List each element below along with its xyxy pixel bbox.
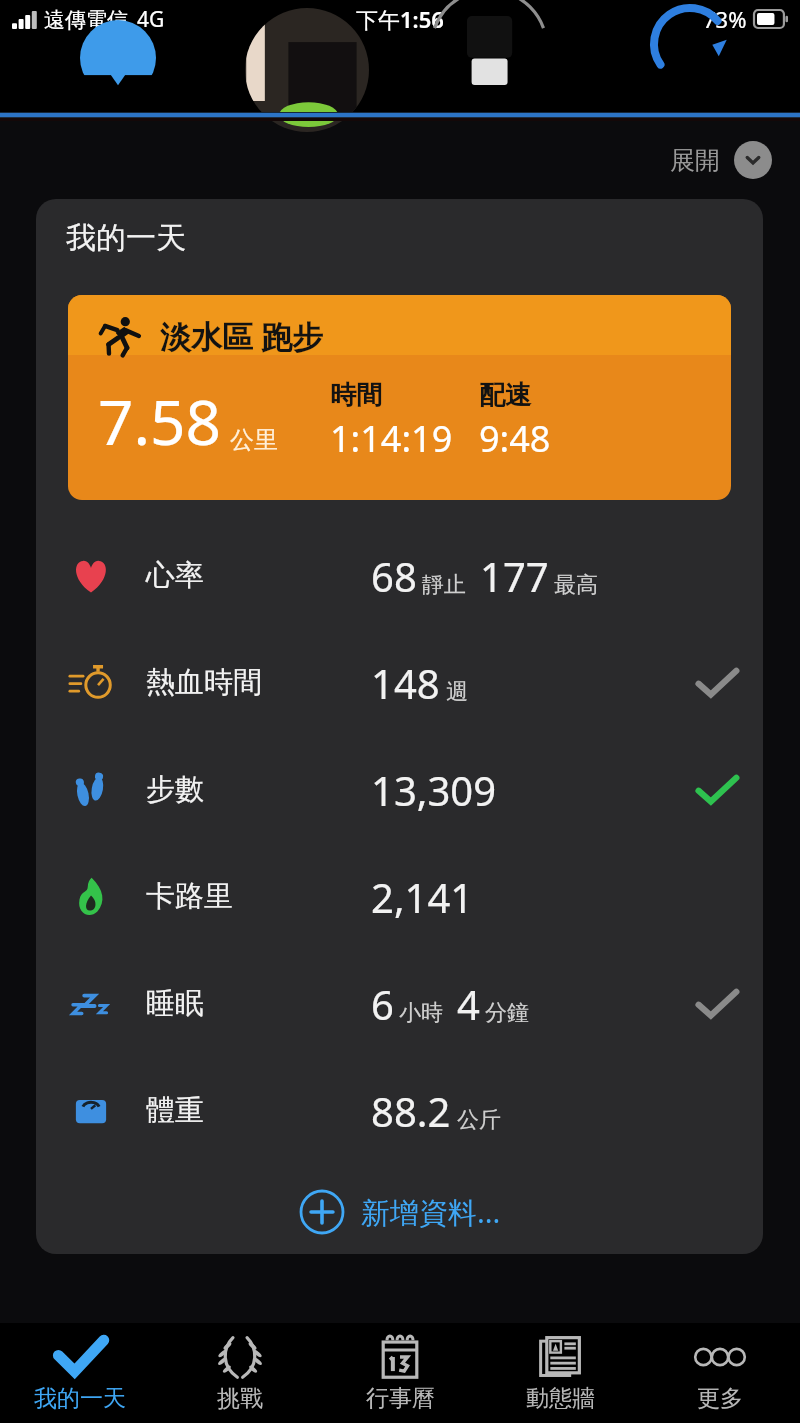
button[interactable]: 挑戰 — [160, 1323, 320, 1423]
staticText: 步數 — [146, 771, 204, 808]
button[interactable]: 心率 — [36, 522, 763, 629]
staticText: 我的一天 — [34, 1384, 126, 1413]
staticText: 最高 — [554, 571, 598, 599]
staticText: 小時 — [399, 999, 443, 1027]
staticText: 體重 — [146, 1092, 204, 1129]
staticText: 2,141 — [371, 870, 474, 924]
staticText: 展開 — [670, 145, 720, 176]
staticText: 4 — [457, 977, 480, 1031]
staticText: 更多 — [697, 1384, 743, 1413]
button[interactable]: 展開 — [666, 135, 776, 185]
staticText: 配速 — [479, 379, 531, 412]
staticText: 9:48 — [479, 414, 551, 463]
staticText: 靜止 — [422, 571, 466, 599]
staticText: 動態牆 — [526, 1384, 595, 1413]
staticText: 公里 — [230, 425, 278, 455]
staticText: 分鐘 — [485, 999, 529, 1027]
staticText: 73% — [703, 4, 747, 34]
staticText: 88.2 — [371, 1084, 451, 1138]
staticText: 68 — [371, 549, 417, 603]
staticText: 148 — [371, 656, 440, 710]
staticText: 遠傳電信 — [44, 7, 128, 33]
staticText: 熱血時間 — [146, 664, 262, 701]
staticText: 1:14:19 — [330, 414, 453, 463]
staticText: 7.58 — [98, 379, 222, 463]
button[interactable]: 睡眠 — [36, 950, 763, 1057]
button[interactable]: 卡路里 — [36, 843, 763, 950]
button[interactable]: 更多 — [640, 1323, 800, 1423]
staticText: 13,309 — [371, 763, 497, 817]
button[interactable]: 熱血時間 — [36, 629, 763, 736]
staticText: 挑戰 — [217, 1384, 263, 1413]
button[interactable]: 我的一天 — [0, 1323, 160, 1423]
staticText: 4G — [137, 5, 165, 34]
staticText: 心率 — [146, 557, 204, 594]
staticText: 我的一天 — [66, 219, 186, 257]
staticText: 卡路里 — [146, 878, 233, 915]
button[interactable]: 行事曆 — [320, 1323, 480, 1423]
staticText: 下午1:56 — [356, 4, 444, 34]
staticText: 時間 — [330, 379, 382, 412]
staticText: 行事曆 — [366, 1384, 435, 1413]
staticText: 睡眠 — [146, 985, 204, 1022]
button[interactable]: 步數 — [36, 736, 763, 843]
staticText: 週 — [446, 678, 468, 706]
staticText: 淡水區 跑步 — [160, 315, 324, 357]
button[interactable]: 動態牆 — [480, 1323, 640, 1423]
staticText: 177 — [480, 549, 549, 603]
staticText: 新增資料... — [361, 1192, 501, 1232]
button[interactable]: 新增資料... — [36, 1170, 763, 1254]
staticText: 6 — [371, 977, 394, 1031]
button[interactable]: 淡水區 跑步 — [68, 295, 731, 500]
staticText: 公斤 — [457, 1106, 501, 1134]
button[interactable]: 體重 — [36, 1057, 763, 1164]
